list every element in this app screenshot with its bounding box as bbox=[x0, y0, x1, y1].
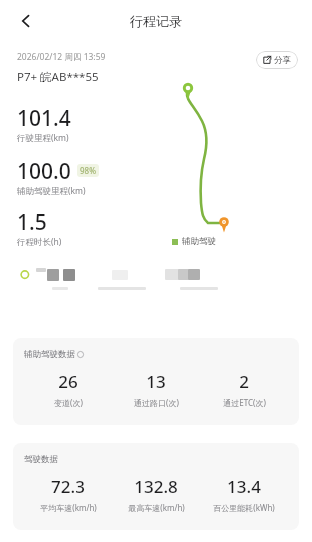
staticText: 百公里能耗(kWh) bbox=[213, 502, 275, 513]
staticText: P7+ 皖AB***55 bbox=[17, 69, 99, 85]
staticText: 分享 bbox=[274, 55, 291, 66]
staticText: 98% bbox=[80, 165, 96, 176]
staticText: 13 bbox=[146, 370, 166, 393]
staticText: 101.4 bbox=[17, 104, 71, 133]
staticText: 行驶里程(km) bbox=[17, 132, 69, 144]
staticText: 13.4 bbox=[227, 475, 261, 498]
button[interactable]: 辅助驾驶数据 bbox=[13, 338, 299, 425]
staticText: 2026/02/12 周四 13:59 bbox=[17, 51, 106, 63]
staticText: 132.8 bbox=[134, 475, 178, 498]
staticText: 1.5 bbox=[17, 208, 47, 237]
staticText: 辅助驾驶里程(km) bbox=[17, 185, 86, 197]
staticText: 最高车速(km/h) bbox=[128, 502, 185, 513]
staticText: 驾驶数据 bbox=[24, 454, 58, 465]
staticText: 26 bbox=[58, 370, 78, 393]
staticText: 100.0 bbox=[17, 157, 71, 186]
button[interactable]: 驾驶数据 bbox=[13, 443, 299, 530]
staticText: 行程记录 bbox=[130, 13, 182, 29]
staticText: 行程时长(h) bbox=[17, 236, 62, 248]
staticText: 辅助驾驶 bbox=[182, 236, 216, 247]
staticText: 辅助驾驶数据 bbox=[24, 349, 75, 360]
staticText: 通过路口(次) bbox=[134, 397, 179, 408]
staticText: 2 bbox=[239, 370, 249, 393]
staticText: 平均车速(km/h) bbox=[40, 502, 97, 513]
staticText: 72.3 bbox=[51, 475, 85, 498]
staticText: 变道(次) bbox=[54, 397, 83, 408]
button[interactable]: Back bbox=[12, 7, 40, 35]
staticText: 通过ETC(次) bbox=[223, 397, 266, 408]
button[interactable]: 分享 bbox=[256, 51, 298, 69]
